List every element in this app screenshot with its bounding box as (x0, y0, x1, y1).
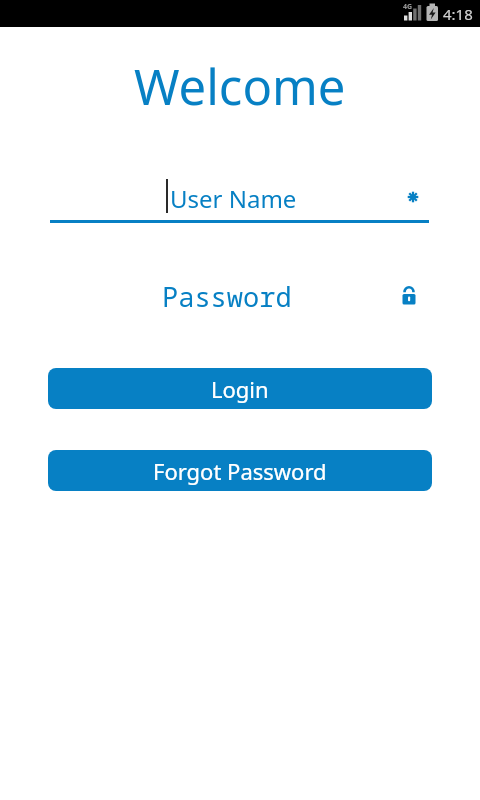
staticText: Password (162, 278, 292, 315)
staticText: Forgot Password (153, 456, 327, 486)
staticText: 4G (403, 2, 413, 12)
staticText: Welcome (134, 53, 346, 120)
staticText: 4:18 (443, 4, 473, 24)
staticText: User Name (170, 182, 297, 215)
button[interactable]: Login (48, 368, 432, 409)
button[interactable]: Forgot Password (48, 450, 432, 491)
staticText: Login (211, 374, 269, 404)
